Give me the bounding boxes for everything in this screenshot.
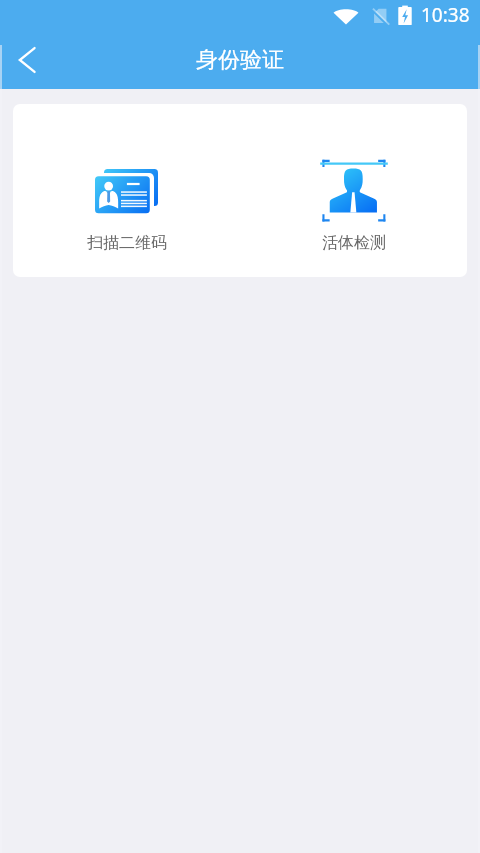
button[interactable]: Back bbox=[0, 33, 54, 87]
staticText: 扫描二维码 bbox=[87, 233, 167, 253]
button[interactable]: 扫描二维码 bbox=[67, 169, 187, 253]
other: Wi-Fi bbox=[333, 6, 359, 25]
staticText: 10:38 bbox=[421, 2, 470, 28]
button[interactable]: 活体检测 bbox=[294, 159, 414, 253]
staticText: 身份验证 bbox=[196, 46, 284, 74]
staticText: 活体检测 bbox=[322, 233, 386, 253]
other: Battery charging bbox=[398, 5, 412, 25]
other: No SIM card bbox=[368, 6, 387, 25]
